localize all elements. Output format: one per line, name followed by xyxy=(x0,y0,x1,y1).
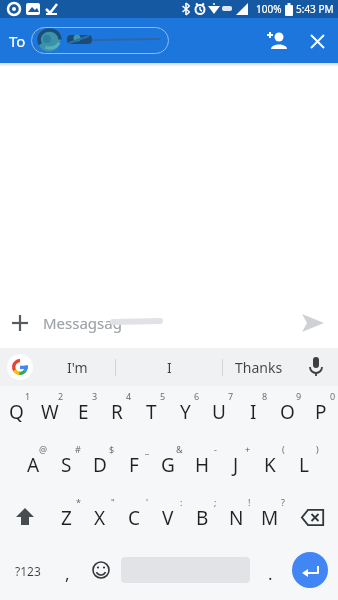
staticText: 2 xyxy=(58,390,64,402)
staticText: H xyxy=(195,452,210,478)
staticText: # xyxy=(75,443,81,455)
button[interactable]: ?123 xyxy=(0,546,50,600)
button[interactable]: ? xyxy=(253,492,287,546)
button[interactable]: _ xyxy=(117,439,151,492)
button[interactable] xyxy=(84,546,118,600)
button[interactable]: 2 xyxy=(33,386,66,439)
staticText: C xyxy=(128,505,141,531)
staticText: _ xyxy=(145,443,149,455)
staticText: L xyxy=(299,452,309,478)
staticText: $ xyxy=(109,443,115,455)
button[interactable]: . xyxy=(253,546,287,600)
staticText: ( xyxy=(282,443,285,455)
staticText: O xyxy=(280,399,295,425)
staticText: 1 xyxy=(25,390,31,402)
staticText: Thanks xyxy=(235,358,283,377)
staticText: ?123 xyxy=(15,563,41,579)
button[interactable]: & xyxy=(151,439,185,492)
button[interactable]: 6 xyxy=(168,386,202,439)
button[interactable]: 9 xyxy=(270,386,304,439)
button[interactable]: ' xyxy=(117,492,151,546)
staticText: Messagsag xyxy=(43,313,122,333)
staticText: G xyxy=(161,452,175,478)
staticText: Z xyxy=(61,505,72,531)
button[interactable]: @ xyxy=(17,439,50,492)
button[interactable]: ( xyxy=(253,439,287,492)
button[interactable]: I'm xyxy=(40,348,115,386)
staticText: R xyxy=(111,399,123,425)
button[interactable]: 8 xyxy=(236,386,270,439)
staticText: N xyxy=(229,505,244,531)
staticText: 0 xyxy=(330,390,336,402)
button[interactable]: Messagsag xyxy=(43,313,296,333)
staticText: P xyxy=(315,399,327,425)
button[interactable] xyxy=(294,348,338,386)
staticText: ) xyxy=(316,443,319,455)
staticText: To xyxy=(9,31,26,51)
button[interactable] xyxy=(304,28,330,54)
staticText: 3 xyxy=(92,390,98,402)
staticText: 9 xyxy=(296,390,302,402)
button[interactable]: 4 xyxy=(100,386,134,439)
staticText: 8 xyxy=(262,390,268,402)
staticText: . xyxy=(268,562,273,585)
staticText: 4 xyxy=(126,390,132,402)
button[interactable]: , xyxy=(50,546,84,600)
staticText: V xyxy=(162,505,174,531)
button[interactable] xyxy=(287,546,338,600)
staticText: E xyxy=(78,399,89,425)
staticText: J xyxy=(233,452,239,478)
button[interactable] xyxy=(0,348,40,386)
button[interactable] xyxy=(118,546,253,600)
staticText: S xyxy=(61,452,72,478)
button[interactable] xyxy=(0,492,50,546)
staticText: F xyxy=(129,452,139,478)
staticText: T xyxy=(146,399,157,425)
staticText: M xyxy=(261,505,279,531)
staticText: A xyxy=(27,452,40,478)
button[interactable] xyxy=(6,309,34,337)
staticText: : xyxy=(180,496,183,508)
staticText: " xyxy=(111,496,115,508)
staticText: ; xyxy=(214,496,217,508)
staticText: I'm xyxy=(67,358,88,377)
button[interactable]: # xyxy=(50,439,83,492)
staticText: ? xyxy=(281,496,285,508)
staticText: X xyxy=(94,505,106,531)
staticText: @ xyxy=(39,443,48,455)
staticText: , xyxy=(65,562,70,585)
staticText: * xyxy=(76,496,81,508)
button[interactable]: : xyxy=(151,492,185,546)
staticText: & xyxy=(176,443,183,455)
button[interactable]: 1 xyxy=(0,386,33,439)
button[interactable]: - xyxy=(185,439,219,492)
staticText: I xyxy=(167,358,172,377)
staticText: 6 xyxy=(194,390,200,402)
button[interactable] xyxy=(287,492,338,546)
button[interactable]: ; xyxy=(185,492,219,546)
staticText: - xyxy=(214,443,217,455)
staticText: 5 xyxy=(160,390,166,402)
button[interactable]: " xyxy=(83,492,117,546)
button[interactable]: 0 xyxy=(304,386,338,439)
staticText: + xyxy=(245,443,251,455)
button[interactable]: Thanks xyxy=(223,348,294,386)
button[interactable] xyxy=(31,27,169,54)
button[interactable]: ) xyxy=(287,439,321,492)
button[interactable]: $ xyxy=(83,439,117,492)
button[interactable] xyxy=(263,27,291,55)
button[interactable]: + xyxy=(219,439,253,492)
button[interactable]: * xyxy=(50,492,83,546)
button[interactable]: 3 xyxy=(66,386,100,439)
button[interactable]: 5 xyxy=(134,386,168,439)
staticText: Y xyxy=(180,399,191,425)
staticText: 100% xyxy=(256,2,282,16)
button[interactable] xyxy=(296,306,330,340)
staticText: B xyxy=(196,505,209,531)
staticText: ' xyxy=(146,496,149,508)
button[interactable]: I xyxy=(116,348,222,386)
button[interactable]: 7 xyxy=(202,386,236,439)
staticText: Q xyxy=(9,399,24,425)
button[interactable]: ! xyxy=(219,492,253,546)
staticText: 7 xyxy=(228,390,234,402)
